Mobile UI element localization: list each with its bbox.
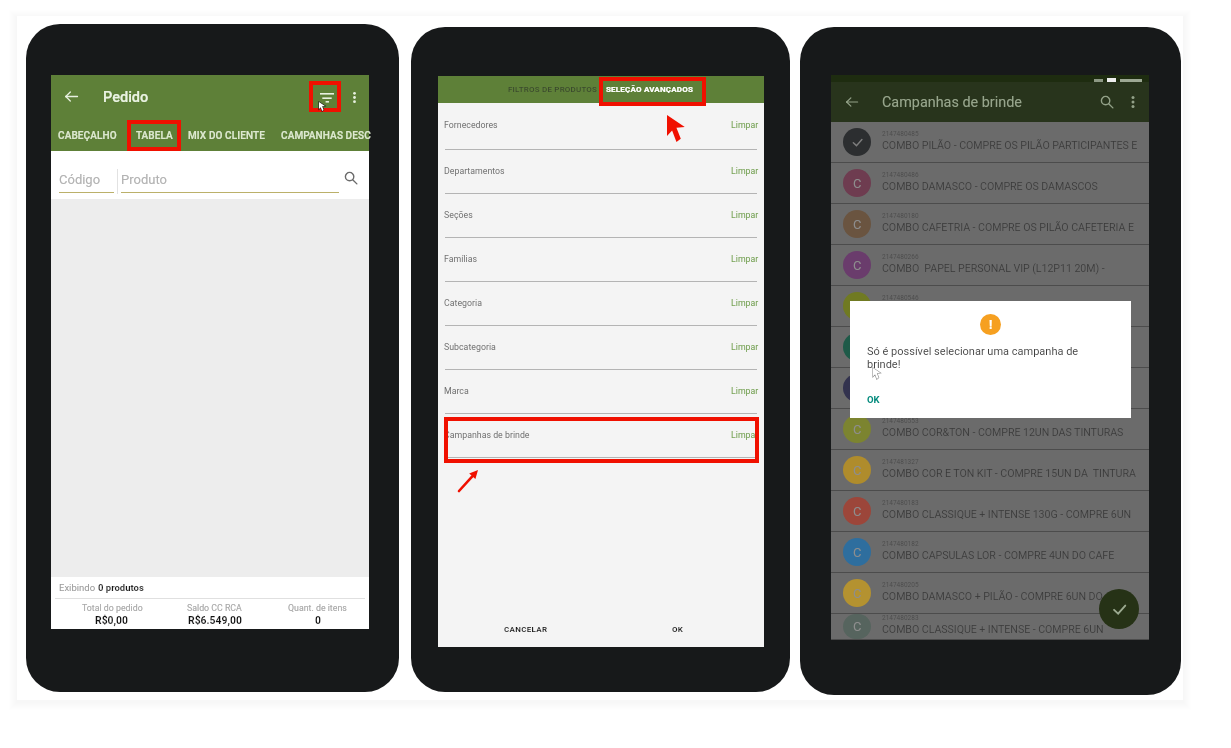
button[interactable]: Quant. de itens	[266, 599, 369, 626]
button[interactable]: C	[831, 450, 1149, 491]
staticText: Limpar	[731, 166, 759, 176]
button[interactable]: OK	[648, 611, 708, 647]
staticText: 2147480183	[882, 499, 919, 507]
button[interactable]: Fornecedores	[438, 103, 764, 150]
staticText: C	[853, 176, 862, 191]
staticText: 2147480485	[882, 130, 919, 138]
staticText: COMBO CAPSULAS LOR - COMPRE 4UN DO CAFE	[882, 549, 1115, 561]
button[interactable]: TABELA	[128, 120, 181, 151]
staticText: COMBO PILÃO - COMPRE OS PILÃO PARTICIPAN…	[882, 139, 1138, 151]
button[interactable]: C	[831, 491, 1149, 532]
staticText: C	[853, 619, 862, 634]
staticText: 0	[315, 614, 321, 626]
button[interactable]: Search	[1095, 90, 1119, 114]
button[interactable]: Back	[59, 84, 84, 109]
staticText: Código	[59, 172, 101, 187]
staticText: 2147480486	[882, 171, 919, 179]
button[interactable]: Subcategoria	[438, 326, 764, 370]
staticText: C	[853, 422, 862, 437]
button[interactable]: C	[831, 327, 1149, 368]
button[interactable]: C	[831, 532, 1149, 573]
button[interactable]: More options	[1123, 92, 1143, 112]
button[interactable]: OK	[867, 394, 880, 405]
button[interactable]: C	[831, 245, 1149, 286]
button[interactable]: Confirm	[1099, 589, 1139, 629]
staticText: Só é possível selecionar uma campanha de	[867, 345, 1079, 358]
button[interactable]: 2147480485	[831, 122, 1149, 163]
staticText: C	[853, 299, 862, 314]
button[interactable]: C	[831, 286, 1149, 327]
staticText: COMBO CLASSIQUE + INTENSE - COMPRE 6UN	[882, 623, 1104, 635]
staticText: FILTROS DE PRODUTOS	[508, 85, 598, 94]
button[interactable]: Marca	[438, 370, 764, 414]
staticText: Pedido	[103, 89, 149, 106]
staticText: R$6.549,00	[188, 614, 242, 626]
button[interactable]: Famílias	[438, 238, 764, 282]
button[interactable]: Back	[839, 89, 865, 115]
button[interactable]: C	[831, 614, 1149, 640]
staticText: CANCELAR	[504, 625, 548, 634]
staticText: 2147480546	[882, 294, 919, 302]
staticText: 2147480205	[882, 581, 919, 589]
staticText: Limpar	[731, 386, 759, 396]
staticText: 2147480180	[882, 212, 919, 220]
staticText: COMBO COR E TON KIT - COMPRE 15UN DA TIN…	[882, 467, 1136, 479]
button[interactable]: CAMPANHAS DESC	[273, 120, 379, 151]
button[interactable]: Total do pedido	[61, 599, 163, 626]
button[interactable]: More options	[344, 87, 365, 108]
staticText: TABELA	[136, 130, 173, 142]
button[interactable]: C	[831, 573, 1149, 614]
button[interactable]: CANCELAR	[486, 611, 566, 647]
button[interactable]: C	[831, 204, 1149, 245]
staticText: Produto	[121, 172, 167, 187]
staticText: COMBO DAMASCO + PILÃO - COMPRE 6UN DO	[882, 590, 1103, 602]
staticText: Campanhas de brinde	[882, 94, 1022, 111]
staticText: COMBO YYY	[882, 344, 941, 356]
button[interactable]: Saldo CC RCA	[163, 599, 266, 626]
staticText: Limpar	[731, 254, 759, 264]
staticText: C	[853, 586, 862, 601]
staticText: Famílias	[444, 254, 477, 264]
button[interactable]: C	[831, 368, 1149, 409]
button[interactable]: Seções	[438, 194, 764, 238]
staticText: Limpar	[731, 120, 759, 130]
staticText: COMBO CLASSIQUE + INTENSE 130G - COMPRE …	[882, 508, 1132, 520]
button[interactable]: Departamentos	[438, 150, 764, 194]
staticText: Marca	[444, 386, 469, 396]
staticText: !	[989, 318, 993, 332]
staticText: Total do pedido	[82, 603, 143, 613]
button[interactable]: CABEÇALHO	[50, 120, 125, 151]
staticText: COMBO COR&TON - COMPRE 12UN DAS TINTURAS	[882, 426, 1124, 438]
button[interactable]: C	[831, 409, 1149, 450]
staticText: 2147480182	[882, 540, 919, 548]
staticText: C	[853, 258, 862, 273]
staticText: SELEÇÃO AVANÇADOS	[606, 85, 694, 94]
staticText: 2147480283	[882, 614, 919, 622]
staticText: Limpar	[731, 298, 759, 308]
staticText: Seções	[444, 210, 473, 220]
button[interactable]: Search	[341, 168, 361, 188]
button[interactable]: Categoria	[438, 282, 764, 326]
button[interactable]: FILTROS DE PRODUTOS	[489, 76, 616, 103]
button[interactable]: SELEÇÃO AVANÇADOS	[599, 76, 701, 103]
staticText: Campanhas de brinde	[444, 430, 530, 440]
button[interactable]: C	[831, 163, 1149, 204]
staticText: C	[853, 545, 862, 560]
staticText: COMBO CAFETRIA - COMPRE OS PILÃO CAFETER…	[882, 221, 1134, 233]
staticText: CABEÇALHO	[58, 130, 117, 142]
staticText: 2147480266	[882, 253, 919, 261]
button[interactable]: Filter	[313, 84, 341, 112]
staticText: brinde!	[867, 358, 901, 371]
staticText: Quant. de itens	[288, 603, 347, 613]
button[interactable]: Campanhas de brinde	[438, 414, 764, 458]
staticText: C	[853, 504, 862, 519]
staticText: 2147480553	[882, 417, 919, 425]
staticText: C	[853, 217, 862, 232]
button[interactable]: MIX DO CLIENTE	[180, 120, 273, 151]
